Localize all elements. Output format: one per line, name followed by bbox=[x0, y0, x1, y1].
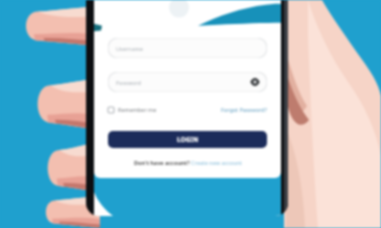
staticText: Username bbox=[116, 45, 143, 52]
button[interactable]: Username bbox=[108, 38, 267, 58]
staticText: Password bbox=[116, 79, 141, 86]
button[interactable]: Show password bbox=[250, 77, 260, 87]
button[interactable]: Forgot Password? bbox=[221, 106, 267, 113]
button[interactable]: Password bbox=[108, 72, 267, 92]
staticText: Create new account bbox=[191, 159, 242, 166]
staticText: LOGIN bbox=[177, 135, 199, 144]
button[interactable]: Create new account bbox=[191, 159, 242, 166]
button[interactable]: LOGIN bbox=[108, 131, 267, 148]
button[interactable]: Remember me bbox=[108, 106, 157, 113]
staticText: Remember me bbox=[118, 106, 157, 113]
staticText: Don't have account? bbox=[134, 159, 191, 166]
staticText: Forgot Password? bbox=[221, 106, 267, 113]
